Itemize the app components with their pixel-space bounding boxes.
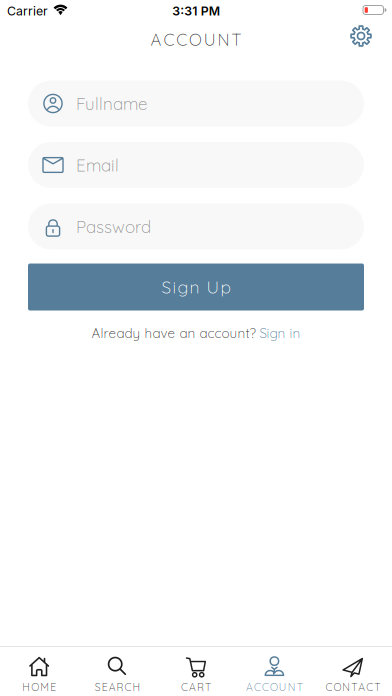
button[interactable]: Home (0, 647, 78, 696)
staticText: O (31, 680, 39, 694)
staticText: R (197, 680, 204, 694)
button[interactable]: Settings (350, 25, 372, 54)
staticText: C (181, 680, 188, 694)
staticText: Email (76, 154, 119, 176)
staticText: 3:31 (172, 4, 197, 18)
staticText: R (117, 680, 124, 694)
staticText: T (205, 680, 211, 694)
staticText: p (220, 276, 230, 298)
staticText: S (95, 680, 101, 694)
staticText: Already have an account? (91, 324, 255, 341)
staticText: C (176, 29, 187, 50)
staticText: C (262, 680, 269, 694)
staticText: S (161, 276, 171, 298)
staticText: T (231, 29, 241, 50)
staticText: N (288, 680, 296, 694)
staticText: N (218, 29, 230, 50)
staticText: A (189, 680, 196, 694)
staticText: A (358, 680, 365, 694)
staticText: M (40, 680, 49, 694)
button[interactable]: Sign in (259, 324, 300, 341)
staticText: E (102, 680, 108, 694)
staticText: Password (76, 216, 151, 237)
staticText: H (22, 680, 30, 694)
staticText: n (189, 276, 199, 298)
staticText: A (109, 680, 116, 694)
staticText: Sign in (259, 324, 300, 341)
staticText: T (297, 680, 303, 694)
staticText: A (151, 29, 162, 50)
staticText: C (124, 680, 131, 694)
staticText: i (172, 276, 176, 298)
button[interactable]: Cart (157, 647, 235, 696)
staticText: C (254, 680, 261, 694)
staticText: O (333, 680, 341, 694)
staticText: g (177, 276, 188, 298)
staticText: U (204, 29, 216, 50)
staticText: O (189, 29, 202, 50)
staticText: C (366, 680, 373, 694)
staticText: T (374, 680, 380, 694)
staticText: Fullname (76, 93, 147, 114)
staticText: U (279, 680, 287, 694)
staticText: C (325, 680, 332, 694)
button[interactable]: Sign Up (28, 263, 364, 310)
staticText: U (206, 276, 219, 298)
staticText: N (342, 680, 350, 694)
button[interactable]: Account (235, 647, 314, 696)
staticText: E (50, 680, 56, 694)
button[interactable]: Search (78, 647, 157, 696)
staticText: Carrier (7, 4, 48, 18)
staticText: A (246, 680, 253, 694)
staticText: O (270, 680, 278, 694)
staticText: H (132, 680, 140, 694)
button[interactable]: Contact (314, 647, 392, 696)
staticText: C (163, 29, 174, 50)
staticText: PM (201, 4, 220, 18)
staticText: T (351, 680, 357, 694)
